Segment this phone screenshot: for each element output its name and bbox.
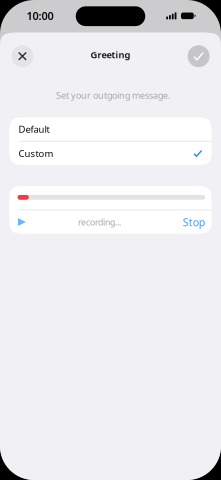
staticText: 10:00 — [26, 8, 53, 23]
staticText: Custom — [19, 147, 54, 160]
button[interactable]: Custom — [9, 142, 212, 165]
staticText: Greeting — [90, 48, 130, 61]
button[interactable]: Done — [187, 44, 211, 68]
staticText: Stop — [183, 215, 206, 229]
staticText: recording... — [78, 216, 121, 228]
button[interactable]: Close — [10, 44, 34, 68]
staticText: Set your outgoing message. — [56, 89, 170, 101]
button[interactable]: Stop — [183, 212, 206, 232]
button[interactable]: Default — [9, 117, 212, 141]
staticText: Default — [19, 123, 50, 136]
button[interactable]: Play — [15, 214, 29, 230]
